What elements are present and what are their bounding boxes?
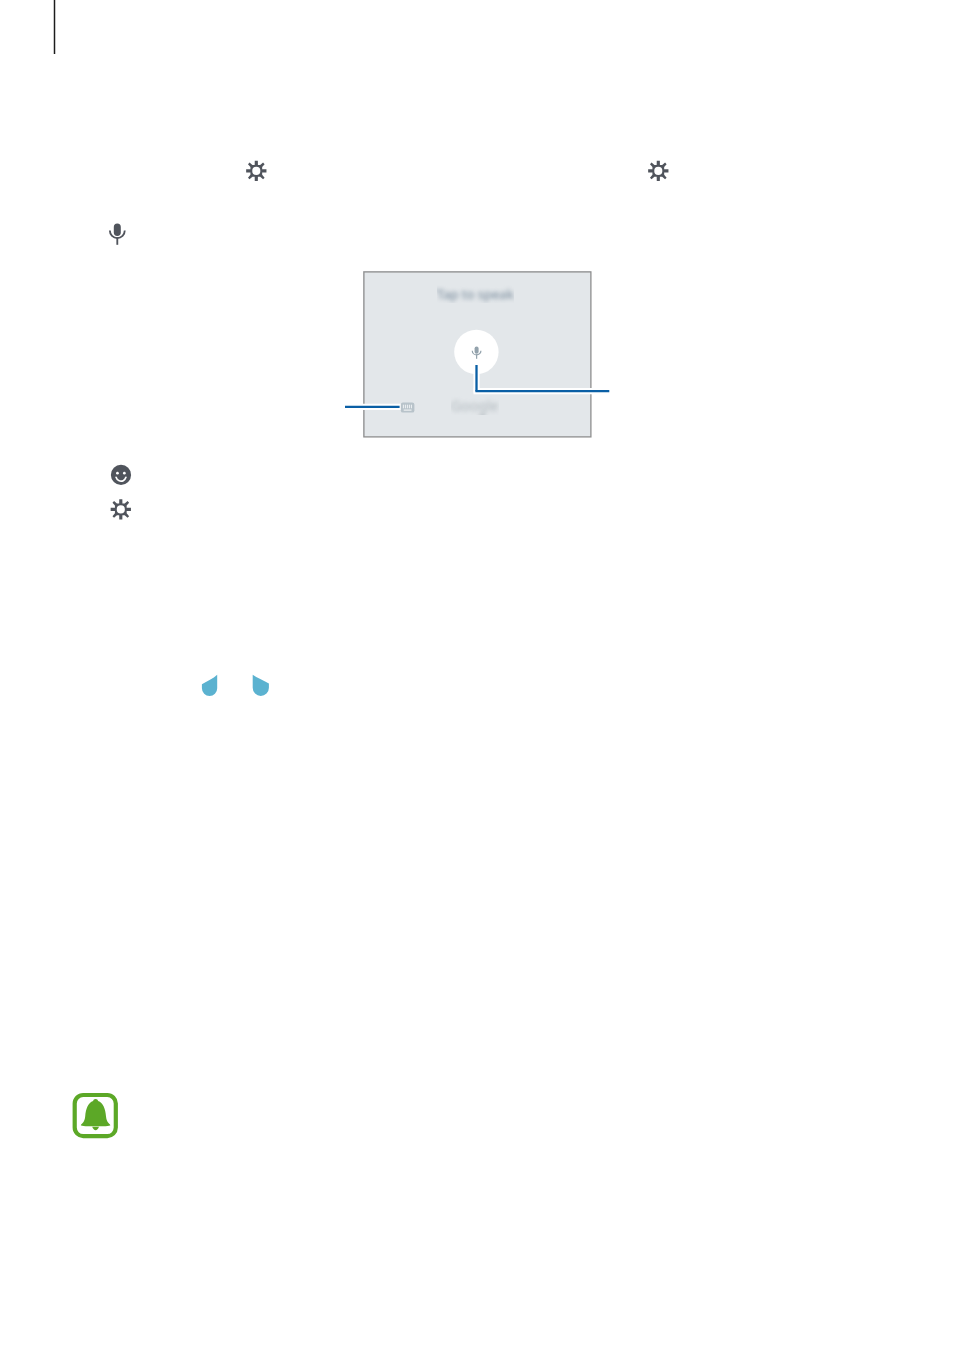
button[interactable]: Voice input: [94, 200, 142, 248]
button[interactable]: Keyboard settings: [98, 486, 144, 532]
button[interactable]: Emoji: [98, 452, 144, 498]
button[interactable]: Note: [70, 1090, 121, 1141]
staticText: Tap to speak: [437, 285, 514, 303]
button[interactable]: Settings: [232, 147, 280, 195]
button[interactable]: Settings: [634, 147, 682, 195]
button[interactable]: Tap to speak: [454, 330, 499, 375]
button[interactable]: Switch to keyboard: [396, 398, 419, 417]
staticText: Google: [451, 396, 499, 415]
